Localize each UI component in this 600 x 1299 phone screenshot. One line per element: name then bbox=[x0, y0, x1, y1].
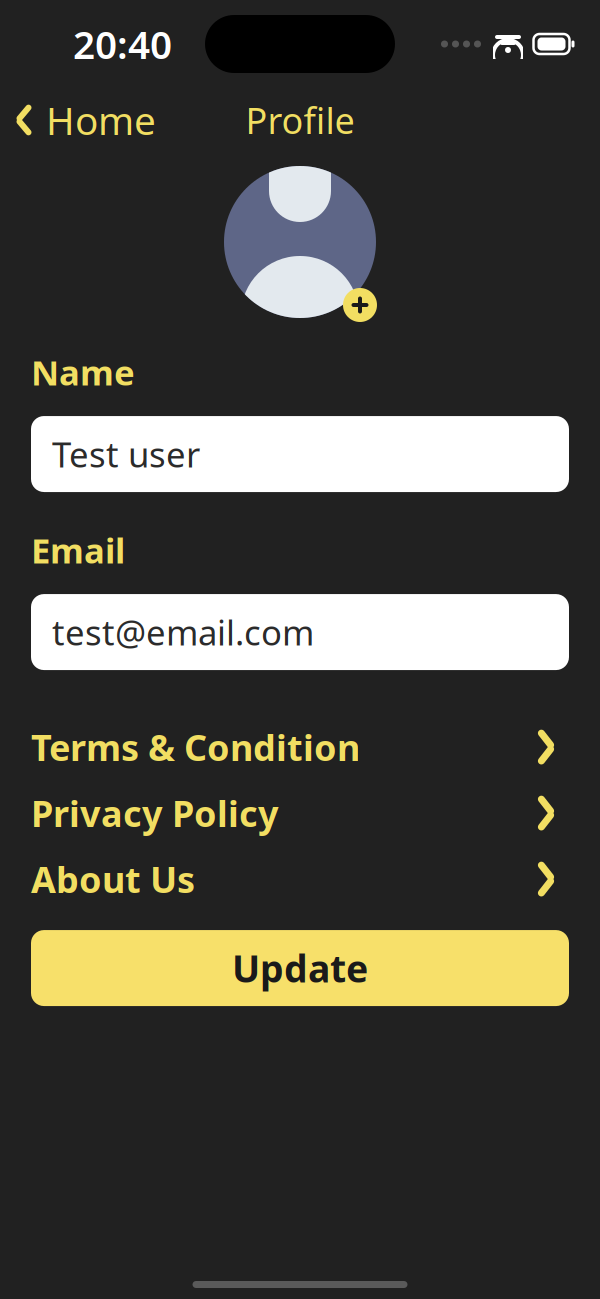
button[interactable]: Test user bbox=[31, 416, 569, 492]
staticText: test@email.com bbox=[52, 609, 314, 655]
staticText: Home bbox=[46, 94, 156, 146]
staticText: Terms & Condition bbox=[31, 723, 360, 771]
staticText: Test user bbox=[52, 431, 200, 477]
button[interactable]: test@email.com bbox=[31, 594, 569, 670]
staticText: Profile bbox=[245, 96, 354, 144]
button[interactable]: Terms & Condition bbox=[31, 724, 569, 770]
button[interactable]: Change photo bbox=[343, 288, 377, 322]
staticText: Privacy Policy bbox=[31, 789, 279, 837]
staticText: Name bbox=[31, 349, 135, 395]
staticText: 20:40 bbox=[73, 18, 172, 70]
staticText: Update bbox=[232, 943, 368, 993]
button[interactable]: Home bbox=[0, 88, 156, 152]
staticText: Email bbox=[31, 527, 125, 573]
button[interactable]: Update bbox=[31, 930, 569, 1006]
button[interactable]: About Us bbox=[31, 856, 569, 902]
button[interactable]: Privacy Policy bbox=[31, 790, 569, 836]
staticText: About Us bbox=[31, 855, 195, 903]
